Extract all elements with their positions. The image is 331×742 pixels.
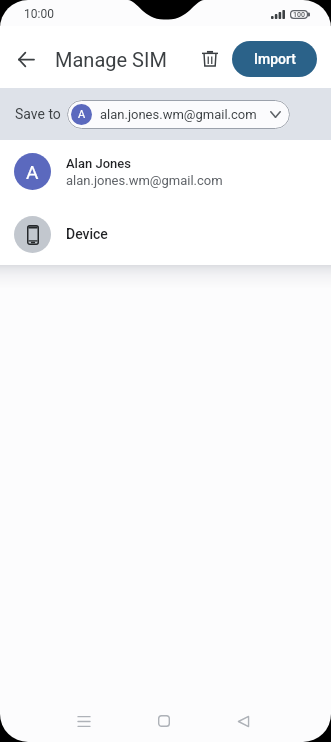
staticText: alan.jones.wm@gmail.com [66,173,223,188]
staticText: 10:00 [24,7,54,21]
staticText: A [78,108,86,121]
button[interactable]: Import [232,41,317,77]
button[interactable]: Home [140,700,188,742]
button[interactable]: A [67,100,290,129]
button[interactable]: Back [219,700,267,742]
staticText: 100 [293,11,305,19]
button[interactable]: Delete [190,38,230,78]
staticText: Save to [15,106,61,122]
staticText: Manage SIM [55,48,167,71]
staticText: Device [66,226,108,242]
button[interactable]: A [0,140,331,203]
staticText: alan.jones.wm@gmail.com [100,107,257,122]
button[interactable]: Navigate up [4,37,48,81]
staticText: A [26,161,39,183]
button[interactable]: Recent apps [60,700,108,742]
staticText: Import [254,51,296,67]
staticText: Alan Jones [66,156,131,171]
button[interactable]: Device [0,203,331,265]
